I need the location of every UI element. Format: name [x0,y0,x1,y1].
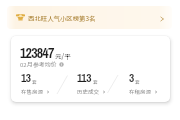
staticText: 123847 [20,44,54,63]
staticText: 02月参考均价 [20,60,57,69]
button[interactable]: 113 [77,70,123,96]
staticText: 在售房源 [21,88,44,96]
staticText: 西北旺人气小区榜第3名 [28,14,96,23]
staticText: 套 [135,78,140,85]
staticText: 3 [129,70,134,85]
staticText: 套 [32,78,37,85]
button[interactable]: 3 [129,70,170,96]
staticText: 历史成交 [77,88,100,96]
staticText: 13 [21,70,31,85]
button[interactable]: 西北旺人气小区榜第3名 [7,6,172,29]
staticText: 113 [77,70,92,85]
staticText: 元/平 [55,51,71,61]
staticText: 在租房源 [129,88,152,96]
button[interactable]: 13 [21,70,67,96]
staticText: 套 [93,78,98,85]
other: 查看榜单 [158,15,166,23]
